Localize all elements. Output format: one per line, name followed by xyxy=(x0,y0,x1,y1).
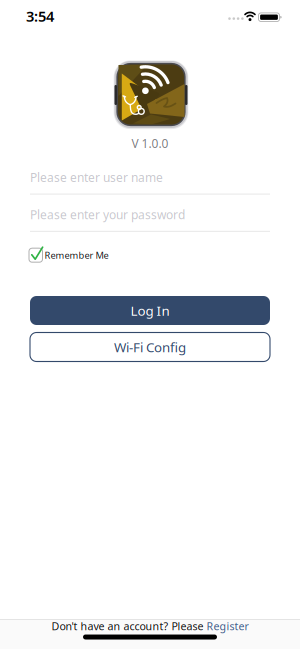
staticText: Log In xyxy=(130,302,169,319)
staticText: Register xyxy=(206,619,248,633)
staticText: Wi-Fi Config xyxy=(114,338,186,356)
staticText: Please enter your password xyxy=(30,207,185,222)
staticText: Remember Me xyxy=(44,249,108,261)
staticText: 3:54 xyxy=(26,6,54,26)
staticText: Please enter user name xyxy=(30,169,163,185)
staticText: Don't have an account? Please xyxy=(51,619,203,633)
button[interactable]: Remember Me xyxy=(29,246,149,264)
button[interactable]: Wi-Fi Config xyxy=(30,332,270,361)
button[interactable]: Please enter your password xyxy=(30,207,270,232)
staticText: V 1.0.0 xyxy=(131,135,168,151)
button[interactable]: Please enter user name xyxy=(30,169,270,195)
button[interactable]: Log In xyxy=(30,296,270,325)
button[interactable]: Register xyxy=(206,619,248,633)
